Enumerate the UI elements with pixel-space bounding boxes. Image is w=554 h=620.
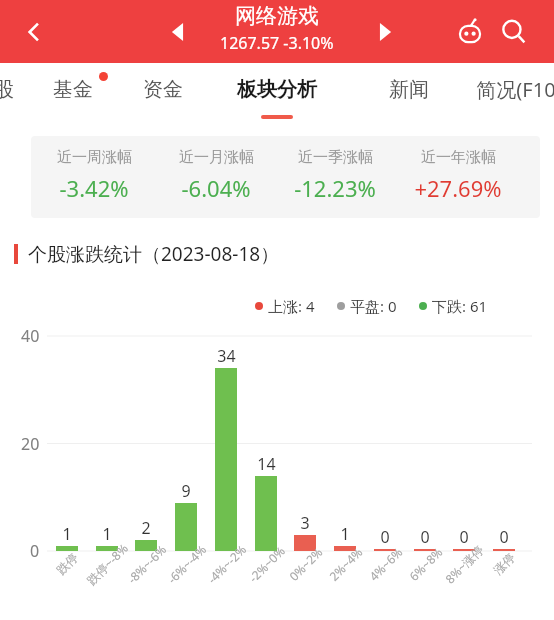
staticText: 1267.57 -3.10% bbox=[220, 32, 334, 54]
staticText: 0 bbox=[499, 526, 509, 548]
staticText: 简况(F10) bbox=[476, 76, 554, 103]
button[interactable]: 下跌: 61 bbox=[419, 296, 488, 316]
staticText: 40 bbox=[21, 325, 40, 347]
button[interactable]: 基金 bbox=[45, 63, 101, 115]
staticText: 个股涨跌统计（2023-08-18） bbox=[28, 241, 280, 267]
staticText: 0 bbox=[30, 540, 40, 562]
button[interactable]: Previous bbox=[158, 12, 198, 52]
staticText: -6.04% bbox=[181, 173, 251, 203]
staticText: 6%~8% bbox=[405, 544, 446, 584]
staticText: 上涨: 4 bbox=[268, 296, 315, 316]
staticText: -6%~-4% bbox=[163, 541, 209, 587]
staticText: -3.42% bbox=[59, 173, 129, 203]
staticText: 3 bbox=[300, 512, 310, 534]
staticText: 4%~6% bbox=[365, 544, 406, 584]
button[interactable] bbox=[135, 540, 157, 551]
staticText: 1 bbox=[102, 523, 112, 545]
button[interactable] bbox=[96, 546, 118, 551]
staticText: 1 bbox=[340, 523, 350, 545]
button[interactable] bbox=[453, 549, 475, 551]
button[interactable]: 股 bbox=[0, 63, 17, 115]
staticText: 基金 bbox=[53, 77, 93, 102]
staticText: -12.23% bbox=[294, 173, 376, 203]
button[interactable]: 上涨: 4 bbox=[255, 296, 315, 316]
button[interactable]: Next bbox=[365, 12, 405, 52]
button[interactable] bbox=[374, 549, 396, 551]
staticText: 2%~4% bbox=[325, 544, 366, 584]
button[interactable] bbox=[334, 546, 356, 551]
staticText: +27.69% bbox=[414, 173, 502, 203]
staticText: 14 bbox=[257, 453, 276, 475]
staticText: 8%~涨停 bbox=[441, 541, 487, 587]
button[interactable]: 简况(F10) bbox=[463, 63, 554, 115]
staticText: 20 bbox=[21, 433, 40, 455]
button[interactable]: 平盘: 0 bbox=[337, 296, 397, 316]
staticText: 平盘: 0 bbox=[350, 296, 397, 316]
staticText: 板块分析 bbox=[237, 77, 317, 102]
staticText: 0 bbox=[459, 526, 469, 548]
staticText: 1 bbox=[62, 523, 72, 545]
staticText: 近一年涨幅 bbox=[421, 148, 496, 167]
button[interactable] bbox=[294, 535, 316, 551]
staticText: 股 bbox=[0, 77, 14, 102]
staticText: 近一月涨幅 bbox=[179, 148, 254, 167]
staticText: 34 bbox=[217, 345, 236, 367]
button[interactable] bbox=[414, 549, 436, 551]
button[interactable]: AI assistant bbox=[448, 10, 492, 54]
staticText: 下跌: 61 bbox=[432, 296, 488, 316]
staticText: 0 bbox=[380, 526, 390, 548]
staticText: 9 bbox=[181, 480, 191, 502]
staticText: 近一季涨幅 bbox=[298, 148, 373, 167]
button[interactable]: 资金 bbox=[135, 63, 191, 115]
staticText: 网络游戏 bbox=[235, 3, 319, 29]
staticText: -2%~0% bbox=[245, 542, 288, 585]
staticText: 跌停 bbox=[53, 550, 81, 577]
staticText: 资金 bbox=[143, 77, 183, 102]
staticText: -8%~-6% bbox=[123, 541, 169, 587]
button[interactable]: 近一周涨幅 bbox=[31, 136, 540, 218]
staticText: 新闻 bbox=[389, 77, 429, 102]
button[interactable]: 板块分析 bbox=[223, 63, 331, 115]
staticText: 近一周涨幅 bbox=[57, 148, 132, 167]
staticText: -4%~-2% bbox=[203, 541, 249, 587]
button[interactable]: 新闻 bbox=[381, 63, 437, 115]
button[interactable] bbox=[175, 503, 197, 551]
staticText: 0 bbox=[420, 526, 430, 548]
staticText: 0%~2% bbox=[285, 544, 326, 584]
staticText: 跌停~-8% bbox=[83, 540, 131, 588]
staticText: 涨停 bbox=[490, 550, 518, 577]
button[interactable]: Search bbox=[492, 10, 536, 54]
button[interactable]: Back bbox=[14, 12, 54, 52]
staticText: 2 bbox=[141, 517, 151, 539]
